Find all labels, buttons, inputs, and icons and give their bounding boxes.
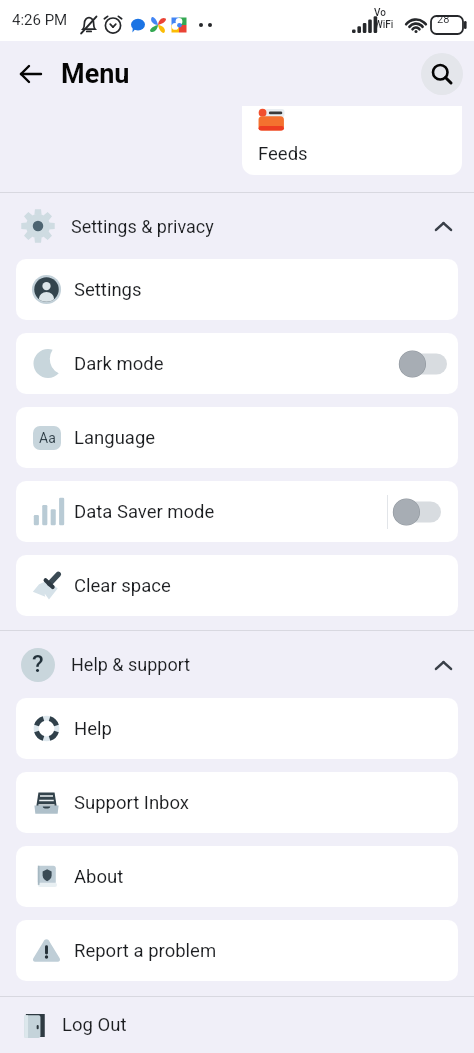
other: Collapse — [430, 652, 456, 678]
staticText: Settings — [74, 279, 142, 301]
staticText: 28 — [437, 13, 450, 26]
button[interactable]: Data Saver mode — [16, 481, 458, 542]
staticText: Clear space — [74, 575, 171, 597]
staticText: Feeds — [258, 143, 308, 165]
staticText: Help — [74, 718, 112, 740]
button[interactable]: Log Out — [0, 997, 474, 1053]
staticText: Menu — [61, 58, 130, 90]
button[interactable]: Support Inbox — [16, 772, 458, 833]
button[interactable]: Back — [10, 53, 52, 95]
button[interactable]: Settings — [16, 259, 458, 320]
button[interactable]: Aa — [16, 407, 458, 468]
button[interactable]: Report a problem — [16, 920, 458, 981]
other: Collapse — [430, 213, 456, 239]
staticText: Language — [74, 427, 156, 449]
button[interactable] — [393, 497, 441, 527]
button[interactable]: Dark mode — [16, 333, 458, 394]
button[interactable]: Search — [421, 53, 463, 95]
button[interactable]: Clear space — [16, 555, 458, 616]
button[interactable]: Settings & privacy — [0, 193, 474, 259]
button[interactable] — [399, 349, 447, 379]
staticText: Support Inbox — [74, 792, 190, 814]
staticText: 4:26 PM — [12, 11, 68, 29]
staticText: Vo WiFi — [374, 7, 394, 30]
button[interactable]: ? — [0, 631, 474, 698]
staticText: Dark mode — [74, 353, 164, 375]
button[interactable]: About — [16, 846, 458, 907]
staticText: Report a problem — [74, 940, 217, 962]
staticText: About — [74, 866, 124, 888]
staticText: Log Out — [62, 1014, 127, 1036]
staticText: Help & support — [71, 654, 191, 675]
button[interactable]: Help — [16, 698, 458, 759]
staticText: ? — [32, 650, 44, 678]
staticText: Aa — [39, 430, 56, 446]
staticText: Settings & privacy — [71, 216, 214, 237]
button[interactable]: Feeds — [242, 106, 462, 175]
staticText: Data Saver mode — [74, 501, 215, 523]
